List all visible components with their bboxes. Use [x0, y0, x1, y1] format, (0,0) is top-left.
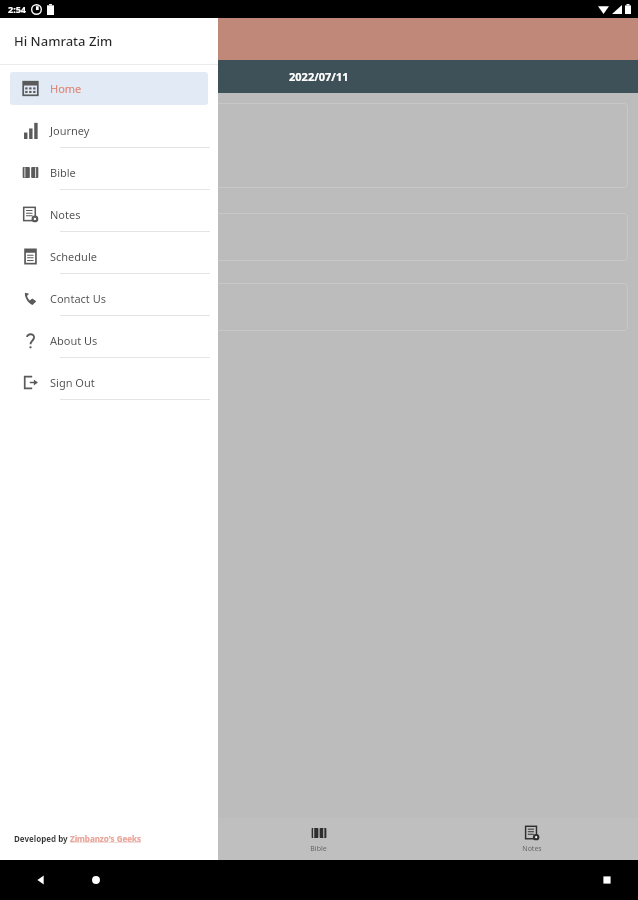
button[interactable]: Recent apps: [598, 871, 616, 889]
staticText: Bible: [310, 844, 327, 854]
button[interactable]: My Renewal Journey: [0, 818, 212, 860]
staticText: About Us: [50, 333, 98, 348]
button[interactable]: Zimbanzo's Geeks: [70, 833, 142, 844]
button[interactable]: Notes: [425, 818, 638, 860]
button[interactable]: Back: [32, 871, 50, 889]
staticText: Contact Us: [50, 291, 106, 306]
staticText: Schedule: [50, 249, 97, 264]
staticText: Notes: [50, 207, 81, 222]
button[interactable]: Notes: [10, 198, 208, 231]
staticText: Bible: [50, 165, 76, 180]
button[interactable]: Home: [10, 72, 208, 105]
button[interactable]: Schedule: [10, 240, 208, 273]
staticText: Journey: [50, 123, 90, 138]
button[interactable]: Bible: [10, 156, 208, 189]
staticText: Developed by: [14, 833, 70, 844]
staticText: Home: [50, 81, 82, 96]
staticText: 2022/07/11: [289, 69, 349, 84]
button[interactable]: Contact Us: [10, 282, 208, 315]
button[interactable]: Home: [87, 871, 105, 889]
button[interactable]: About Us: [10, 324, 208, 357]
staticText: Hi Namrata Zim: [14, 32, 113, 50]
button[interactable]: Journey: [10, 114, 208, 147]
button[interactable]: Sign Out: [10, 366, 208, 399]
staticText: 2:54: [8, 3, 26, 15]
staticText: Sign Out: [50, 375, 95, 390]
staticText: Notes: [522, 844, 542, 854]
button[interactable]: Bible: [212, 818, 425, 860]
